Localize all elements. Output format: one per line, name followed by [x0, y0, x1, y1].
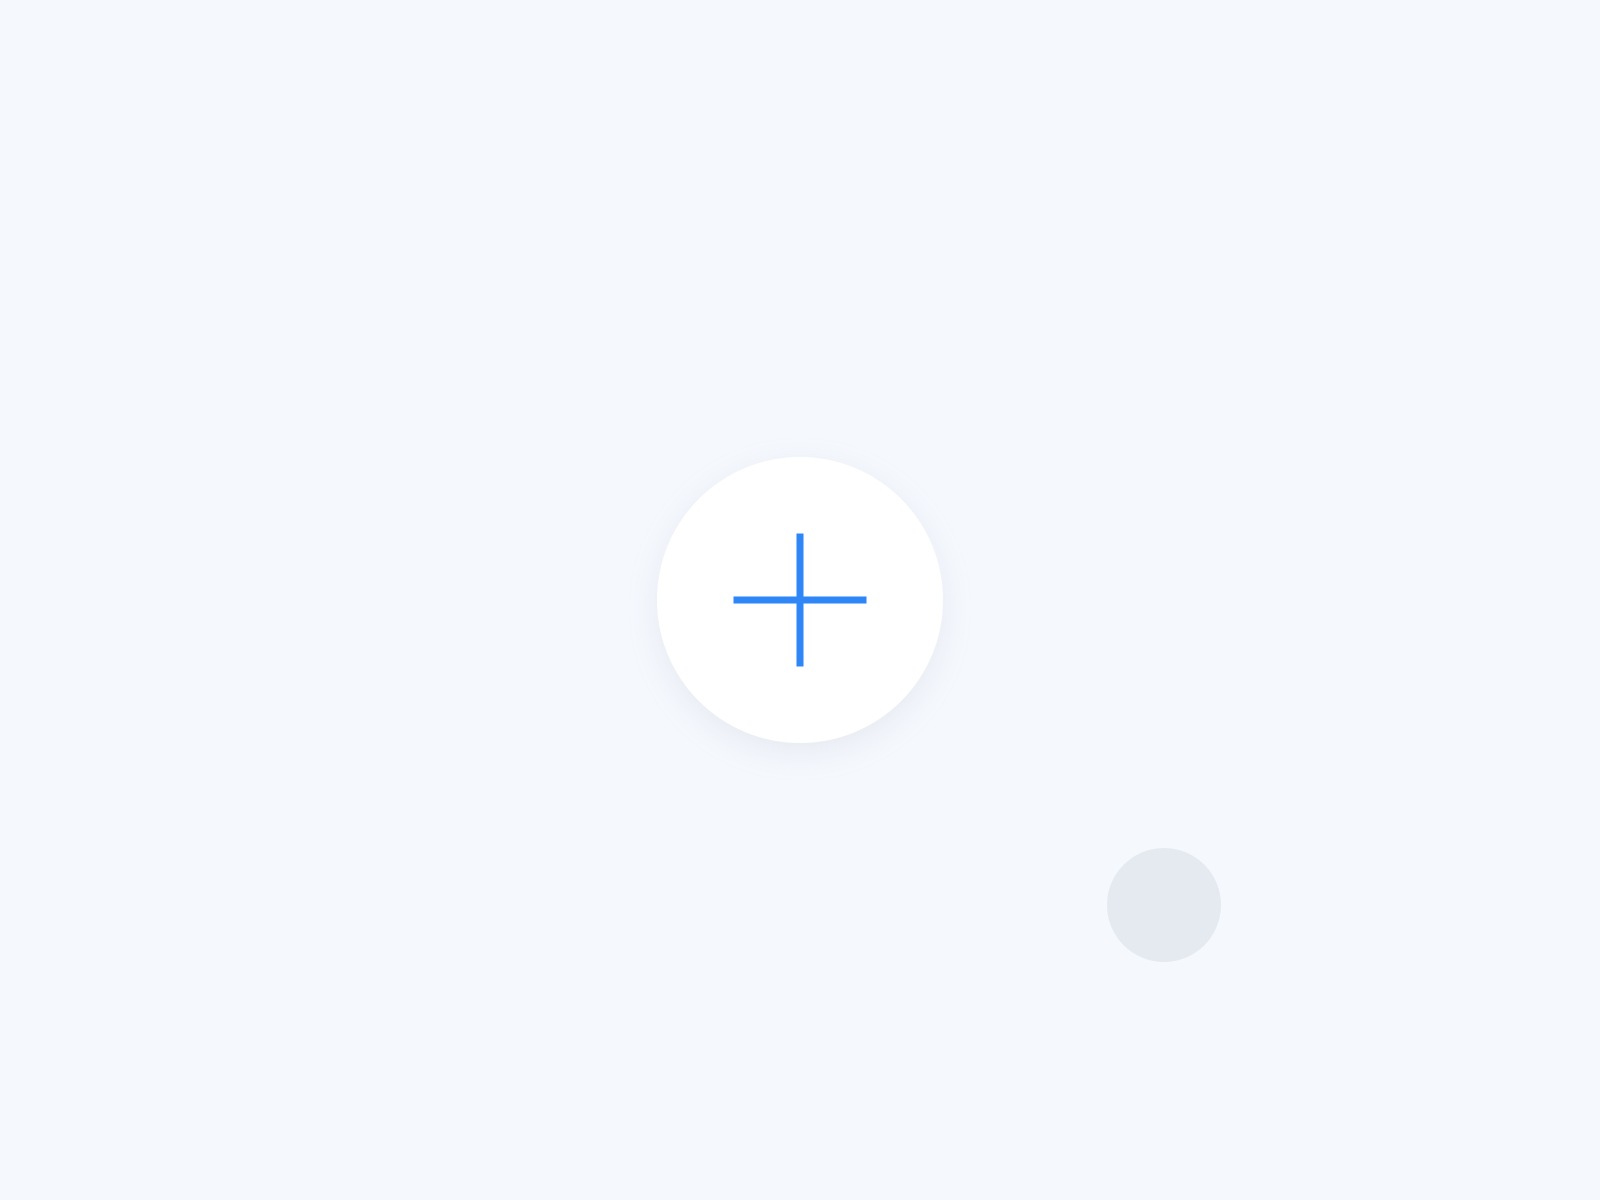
button[interactable]: Profile [1107, 848, 1221, 962]
button[interactable]: Add [657, 457, 943, 743]
